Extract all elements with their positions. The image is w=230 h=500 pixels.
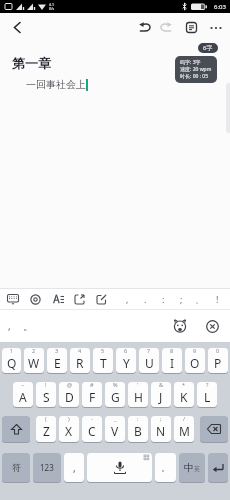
button[interactable]: 0 bbox=[208, 348, 228, 373]
button[interactable]: 123 bbox=[33, 453, 61, 482]
staticText: 时长: 00 : 05 bbox=[180, 73, 209, 80]
button[interactable]: 8 bbox=[162, 348, 182, 373]
button[interactable] bbox=[208, 453, 228, 482]
button[interactable]: - bbox=[82, 416, 102, 442]
staticText: * bbox=[182, 382, 186, 388]
button[interactable]: 3 bbox=[47, 348, 67, 373]
button[interactable]: ' bbox=[128, 382, 148, 407]
button[interactable]: : bbox=[128, 416, 148, 442]
staticText: I bbox=[170, 355, 175, 371]
button[interactable]: ; bbox=[172, 289, 190, 309]
staticText: L bbox=[204, 389, 211, 405]
button[interactable]: ? bbox=[197, 382, 217, 407]
button[interactable]: 7 bbox=[139, 348, 159, 373]
button[interactable] bbox=[168, 314, 192, 338]
staticText: G bbox=[111, 389, 120, 405]
staticText: ? bbox=[206, 382, 209, 388]
button[interactable] bbox=[200, 314, 224, 338]
button[interactable]: 6 bbox=[116, 348, 136, 373]
button[interactable]: * bbox=[174, 382, 194, 407]
staticText: 符 bbox=[12, 462, 21, 473]
button[interactable] bbox=[91, 289, 111, 309]
button[interactable] bbox=[200, 416, 228, 442]
staticText: J bbox=[159, 389, 163, 405]
button[interactable] bbox=[2, 416, 30, 442]
button[interactable]: / bbox=[174, 416, 194, 442]
button[interactable]: 1 bbox=[2, 348, 21, 373]
staticText: P bbox=[214, 355, 222, 371]
button[interactable]: 4 bbox=[70, 348, 90, 373]
staticText: V bbox=[111, 423, 119, 439]
button[interactable]: , bbox=[64, 453, 84, 482]
button[interactable]: ! bbox=[36, 382, 56, 407]
button[interactable]: @ bbox=[59, 382, 79, 407]
button[interactable] bbox=[0, 13, 34, 42]
button[interactable]: 中 bbox=[179, 453, 205, 482]
button[interactable]: 符 bbox=[2, 453, 30, 482]
staticText: / bbox=[183, 416, 186, 422]
button[interactable]: ; bbox=[151, 416, 171, 442]
staticText: 7 bbox=[147, 348, 151, 354]
button[interactable]: ~ bbox=[13, 382, 33, 407]
button[interactable] bbox=[204, 13, 228, 42]
button[interactable] bbox=[133, 13, 155, 42]
staticText: # bbox=[90, 382, 94, 388]
button[interactable] bbox=[47, 289, 67, 309]
staticText: 中 bbox=[184, 461, 194, 474]
staticText: 6:03 bbox=[214, 3, 226, 11]
staticText: 4 bbox=[78, 348, 82, 354]
staticText: 4.1 K/s bbox=[49, 2, 55, 11]
button[interactable]: 2 bbox=[24, 348, 44, 373]
staticText: D bbox=[65, 389, 74, 405]
staticText: 第一章 bbox=[12, 55, 51, 71]
staticText: R bbox=[76, 355, 84, 371]
staticText: 0 bbox=[216, 348, 220, 354]
button[interactable]: & bbox=[151, 382, 171, 407]
button[interactable]: 。 bbox=[155, 453, 176, 482]
staticText: ~ bbox=[21, 382, 25, 388]
staticText: 码字: 3字 bbox=[180, 59, 201, 66]
button[interactable]: , bbox=[118, 289, 136, 309]
button[interactable]: , bbox=[8, 319, 11, 333]
button[interactable]: ) bbox=[59, 416, 79, 442]
staticText: 一回事社会上 bbox=[26, 78, 86, 91]
button[interactable]: 。 bbox=[23, 320, 33, 333]
button[interactable]: % bbox=[105, 382, 125, 407]
button[interactable]: 5 bbox=[93, 348, 113, 373]
staticText: 6字 bbox=[203, 44, 213, 52]
staticText: ! bbox=[216, 293, 219, 305]
staticText: : bbox=[137, 416, 139, 422]
staticText: A bbox=[19, 389, 27, 405]
staticText: H bbox=[134, 389, 143, 405]
button[interactable] bbox=[25, 289, 45, 309]
staticText: 速度: 20 wpm bbox=[180, 66, 212, 73]
staticText: - bbox=[91, 416, 93, 422]
button[interactable]: : bbox=[154, 289, 172, 309]
staticText: 2 bbox=[32, 348, 36, 354]
button[interactable]: # bbox=[82, 382, 102, 407]
button[interactable]: . bbox=[136, 289, 154, 309]
staticText: U bbox=[145, 355, 154, 371]
button[interactable]: ! bbox=[208, 289, 226, 309]
button[interactable]: 、 bbox=[190, 289, 208, 309]
staticText: , bbox=[73, 461, 76, 475]
button[interactable]: ( bbox=[36, 416, 56, 442]
staticText: O bbox=[190, 355, 200, 371]
button[interactable] bbox=[155, 13, 177, 42]
button[interactable] bbox=[69, 289, 89, 309]
staticText: E bbox=[54, 355, 61, 371]
staticText: ; bbox=[180, 293, 183, 305]
staticText: X bbox=[65, 423, 73, 439]
staticText: 英 bbox=[194, 465, 200, 473]
staticText: ! bbox=[45, 382, 47, 388]
staticText: ; bbox=[160, 416, 162, 422]
button[interactable]: 9 bbox=[185, 348, 205, 373]
button[interactable]: 6字 bbox=[198, 43, 218, 53]
button[interactable] bbox=[3, 289, 23, 309]
button[interactable] bbox=[87, 453, 152, 482]
button[interactable]: _ bbox=[105, 416, 125, 442]
staticText: , bbox=[126, 293, 129, 305]
button[interactable] bbox=[180, 13, 202, 42]
staticText: T bbox=[100, 355, 107, 371]
staticText: 9 bbox=[193, 348, 197, 354]
